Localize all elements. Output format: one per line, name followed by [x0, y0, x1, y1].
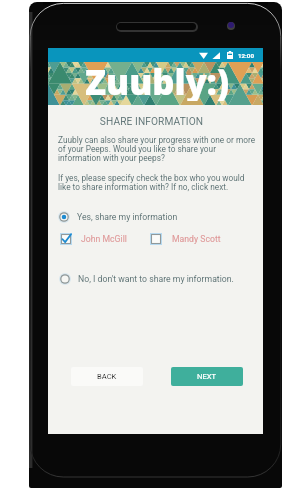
staticText: Zuubly can also share your progress with…: [58, 135, 256, 164]
staticText: NEXT: [197, 372, 217, 381]
staticText: John McGill: [81, 234, 127, 244]
staticText: 12:00: [238, 52, 254, 59]
staticText: SHARE INFORMATION: [44, 116, 259, 128]
staticText: If yes, please specify check the box who…: [58, 173, 248, 193]
staticText: Zuubly:): [85, 58, 230, 101]
other: Battery: [227, 51, 233, 59]
button[interactable]: Yes, share my information: [58, 210, 178, 224]
staticText: No, I don't want to share my information…: [78, 274, 234, 284]
button[interactable]: No, I don't want to share my information…: [59, 272, 234, 286]
button[interactable]: Mandy Scott: [150, 233, 221, 245]
other: Signal: [212, 52, 220, 59]
staticText: Yes, share my information: [77, 212, 178, 222]
other: Wi-Fi: [199, 52, 208, 59]
button[interactable]: NEXT: [171, 367, 243, 386]
staticText: Mandy Scott: [172, 234, 221, 244]
staticText: BACK: [97, 372, 117, 381]
button[interactable]: BACK: [71, 367, 143, 386]
button[interactable]: John McGill: [60, 233, 127, 245]
